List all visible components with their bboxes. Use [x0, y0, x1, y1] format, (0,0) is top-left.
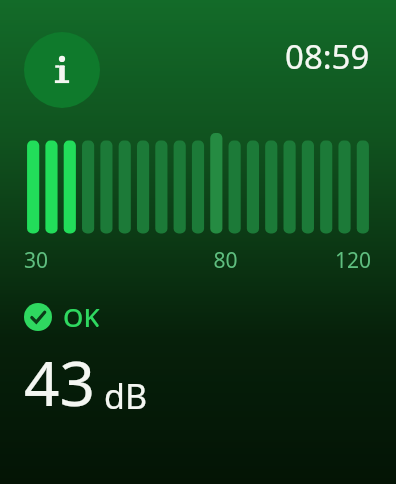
staticText: 08:59 — [285, 34, 370, 79]
staticText: 30 — [24, 246, 49, 275]
button[interactable]: OK — [24, 299, 100, 334]
staticText: 43 — [24, 340, 95, 424]
staticText: OK — [63, 299, 100, 334]
staticText: dB — [104, 373, 148, 419]
staticText: 80 — [213, 246, 238, 275]
button[interactable]: 43 — [24, 340, 148, 424]
staticText: 120 — [335, 246, 372, 275]
button[interactable]: Information — [24, 32, 100, 108]
